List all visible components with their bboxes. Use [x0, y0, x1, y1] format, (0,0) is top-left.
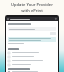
button[interactable] — [8, 51, 56, 54]
button[interactable]: Menu — [7, 18, 9, 20]
staticText: Update Your Provider — [11, 2, 53, 7]
button[interactable] — [8, 71, 56, 72]
button[interactable]: Search — [55, 18, 57, 20]
button[interactable] — [8, 63, 56, 66]
button[interactable] — [8, 27, 56, 31]
button[interactable] — [8, 59, 56, 62]
staticText: with ePrint — [21, 8, 43, 13]
button[interactable] — [8, 55, 56, 58]
